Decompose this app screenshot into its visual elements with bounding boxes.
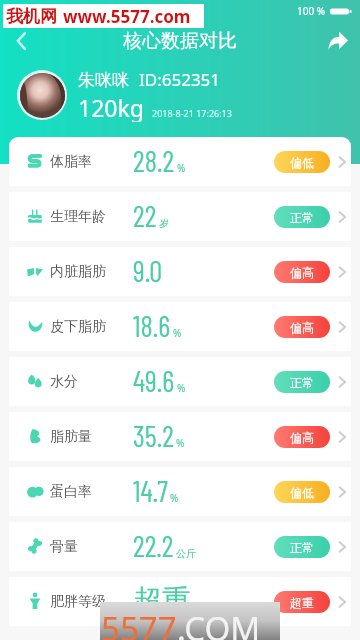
button[interactable]: 骨量 — [9, 522, 351, 571]
staticText: 生理年龄 — [50, 208, 106, 226]
staticText: 正常 — [290, 540, 314, 555]
button[interactable]: 生理年龄 — [9, 192, 351, 241]
staticText: 正常 — [290, 210, 314, 225]
button[interactable]: 超重 — [274, 591, 330, 613]
staticText: 超重 — [290, 595, 314, 610]
staticText: 100 % — [297, 4, 326, 18]
staticText: 偏高 — [290, 320, 314, 335]
button[interactable]: 脂肪量 — [9, 412, 351, 461]
staticText: 岁 — [159, 217, 169, 230]
staticText: 公斤 — [176, 547, 196, 560]
button[interactable]: 内脏脂肪 — [9, 247, 351, 296]
staticText: 22.2 — [133, 528, 174, 563]
staticText: % — [176, 436, 185, 450]
staticText: 49.6 — [133, 363, 175, 398]
button[interactable]: Share — [316, 20, 360, 62]
staticText: 皮下脂肪 — [50, 318, 106, 336]
staticText: 35.2 — [133, 418, 174, 453]
button[interactable]: 正常 — [274, 536, 330, 558]
staticText: 22 — [133, 198, 157, 233]
staticText: 脂肪量 — [50, 428, 92, 446]
button[interactable]: 偏高 — [274, 261, 330, 283]
staticText: 偏高 — [290, 265, 314, 280]
staticText: 超重 — [133, 582, 191, 619]
staticText: 朱咪咪 — [78, 70, 129, 91]
button[interactable]: Back — [0, 20, 44, 62]
staticText: 28.2 — [133, 143, 175, 178]
staticText: 内脏脂肪 — [50, 263, 106, 281]
staticText: 我机网 — [6, 6, 57, 27]
staticText: 14.7 — [133, 473, 168, 508]
staticText: 5577 — [101, 606, 177, 640]
staticText: 偏低 — [290, 155, 314, 170]
staticText: 9.0 — [133, 253, 163, 288]
button[interactable]: 正常 — [274, 371, 330, 393]
staticText: 120kg — [78, 92, 144, 122]
staticText: 正常 — [290, 375, 314, 390]
button[interactable]: 偏低 — [274, 481, 330, 503]
staticText: 肥胖等级 — [50, 593, 106, 611]
staticText: 骨量 — [50, 538, 78, 556]
staticText: % — [177, 161, 186, 175]
staticText: ID:652351 — [139, 68, 221, 91]
staticText: 蛋白率 — [50, 483, 92, 501]
button[interactable]: 蛋白率 — [9, 467, 351, 516]
button[interactable]: 水分 — [9, 357, 351, 406]
button[interactable]: 偏高 — [274, 426, 330, 448]
button[interactable]: 正常 — [274, 206, 330, 228]
button[interactable]: 偏低 — [274, 151, 330, 173]
staticText: % — [170, 491, 179, 505]
staticText: .COM — [177, 606, 261, 640]
staticText: 2018-8-21 17:26:13 — [152, 107, 232, 119]
button[interactable]: 肥胖等级 — [9, 577, 351, 626]
staticText: www.5577.com — [63, 5, 191, 28]
staticText: 水分 — [50, 373, 78, 391]
staticText: 核心数据对比 — [123, 29, 237, 53]
button[interactable]: 皮下脂肪 — [9, 302, 351, 351]
staticText: 18.6 — [133, 308, 171, 343]
staticText: 体脂率 — [50, 153, 92, 171]
button[interactable]: 偏高 — [274, 316, 330, 338]
staticText: 偏低 — [290, 485, 314, 500]
staticText: % — [173, 326, 182, 340]
staticText: % — [177, 381, 186, 395]
button[interactable]: 体脂率 — [9, 137, 351, 186]
staticText: 偏高 — [290, 430, 314, 445]
